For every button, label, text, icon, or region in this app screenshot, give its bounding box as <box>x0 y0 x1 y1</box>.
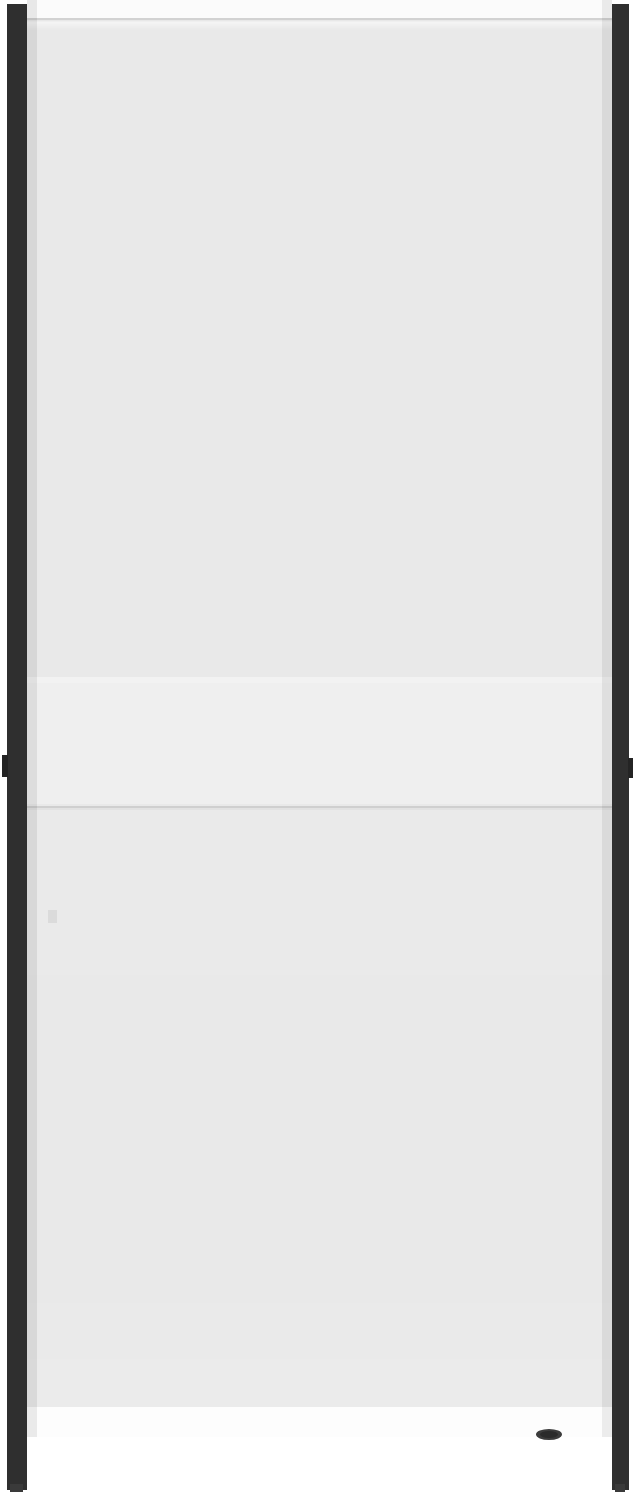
button[interactable]: Volume button <box>2 752 12 778</box>
button[interactable] <box>27 806 612 1437</box>
button[interactable]: Power button <box>626 756 635 780</box>
button[interactable] <box>27 0 612 681</box>
button[interactable] <box>27 681 612 804</box>
